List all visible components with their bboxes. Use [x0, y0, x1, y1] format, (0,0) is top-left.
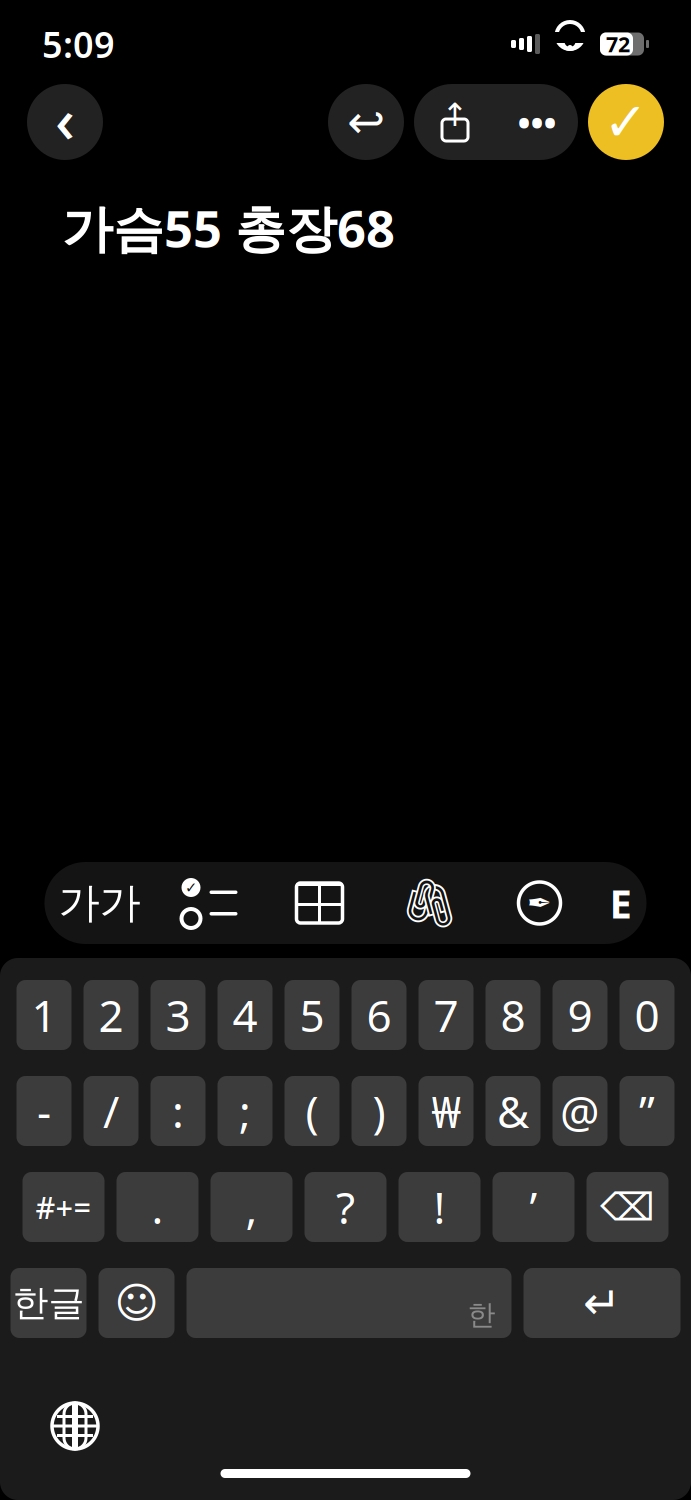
button[interactable]: ₩ [418, 1076, 473, 1146]
staticText: #+= [35, 1187, 91, 1227]
button[interactable]: Next keyboard [40, 1391, 110, 1461]
button[interactable]: 6 [351, 980, 406, 1050]
staticText: & [497, 1082, 529, 1140]
staticText: 0 [634, 986, 659, 1044]
button[interactable]: . [116, 1172, 198, 1242]
staticText: 6 [366, 986, 391, 1044]
staticText: 4 [232, 986, 257, 1044]
staticText: 2 [98, 986, 123, 1044]
button[interactable]: 1 [16, 980, 71, 1050]
staticText: E [609, 876, 631, 929]
button[interactable]: More symbols [22, 1172, 104, 1242]
staticText: ↑ [441, 97, 468, 133]
button[interactable]: @ [552, 1076, 607, 1146]
button[interactable]: Undo [328, 84, 404, 160]
button[interactable]: ) [351, 1076, 406, 1146]
staticText: ⌫ [600, 1185, 655, 1229]
staticText: ✒ [527, 886, 552, 920]
staticText: 🖇 [399, 876, 460, 930]
button[interactable]: 5 [284, 980, 339, 1050]
staticText: 가가 [58, 878, 140, 928]
button[interactable]: / [83, 1076, 138, 1146]
staticText: 한 [467, 1298, 495, 1332]
staticText: - [37, 1082, 51, 1140]
button[interactable]: 7 [418, 980, 473, 1050]
staticText: ‹ [55, 78, 75, 160]
staticText: ↩ [347, 96, 385, 148]
button[interactable]: 9 [552, 980, 607, 1050]
staticText: ••• [517, 99, 556, 145]
button[interactable]: Checklist [154, 862, 264, 944]
staticText: 7 [433, 986, 458, 1044]
button[interactable]: ! [398, 1172, 480, 1242]
button[interactable]: 4 [217, 980, 272, 1050]
staticText: . [151, 1178, 163, 1236]
staticText: 5 [299, 986, 324, 1044]
staticText: @ [560, 1082, 600, 1140]
button[interactable]: Apostrophe [492, 1172, 574, 1242]
button[interactable]: Markup [484, 862, 594, 944]
button[interactable]: More tools [594, 862, 646, 944]
button[interactable]: Korean keyboard [10, 1268, 86, 1338]
staticText: / [103, 1082, 119, 1140]
staticText: ☺ [114, 1279, 158, 1327]
staticText: 가슴55 총장68 [62, 194, 395, 261]
button[interactable]: Back [27, 84, 103, 160]
staticText: ) [372, 1082, 385, 1140]
staticText: ✓ [185, 879, 197, 896]
button[interactable]: Done [588, 84, 664, 160]
staticText: ( [305, 1082, 318, 1140]
button[interactable]: Share [414, 84, 496, 160]
staticText: , [245, 1178, 257, 1236]
button[interactable]: ? [304, 1172, 386, 1242]
staticText: 한글 [12, 1281, 84, 1325]
staticText: ; [239, 1082, 251, 1140]
button[interactable]: Delete [586, 1172, 668, 1242]
button[interactable]: 8 [485, 980, 540, 1050]
button[interactable]: More [496, 84, 578, 160]
button[interactable]: Emoji [98, 1268, 174, 1338]
staticText: : [172, 1082, 184, 1140]
staticText: ? [336, 1178, 355, 1236]
button[interactable]: 3 [150, 980, 205, 1050]
button[interactable]: : [150, 1076, 205, 1146]
staticText: ₩ [431, 1082, 460, 1140]
staticText: ! [433, 1178, 445, 1236]
button[interactable]: & [485, 1076, 540, 1146]
staticText: ” [639, 1082, 655, 1140]
staticText: ↵ [583, 1277, 621, 1329]
button[interactable]: Text format [44, 862, 154, 944]
button[interactable]: Quotation mark [619, 1076, 674, 1146]
button[interactable]: 2 [83, 980, 138, 1050]
staticText: 1 [31, 986, 56, 1044]
button[interactable]: Return [523, 1268, 680, 1338]
button[interactable]: Table [264, 862, 374, 944]
button[interactable]: , [210, 1172, 292, 1242]
button[interactable]: 0 [619, 980, 674, 1050]
button[interactable]: Attach file [374, 862, 484, 944]
staticText: ’ [529, 1178, 537, 1236]
staticText: 9 [567, 986, 592, 1044]
button[interactable]: ; [217, 1076, 272, 1146]
staticText: 72 [606, 30, 630, 58]
button[interactable]: Space [186, 1268, 511, 1338]
button[interactable]: ( [284, 1076, 339, 1146]
staticText: 5:09 [42, 20, 115, 68]
button[interactable]: - [16, 1076, 71, 1146]
staticText: 3 [165, 986, 190, 1044]
staticText: 8 [500, 986, 525, 1044]
staticText: ✓ [603, 92, 648, 152]
